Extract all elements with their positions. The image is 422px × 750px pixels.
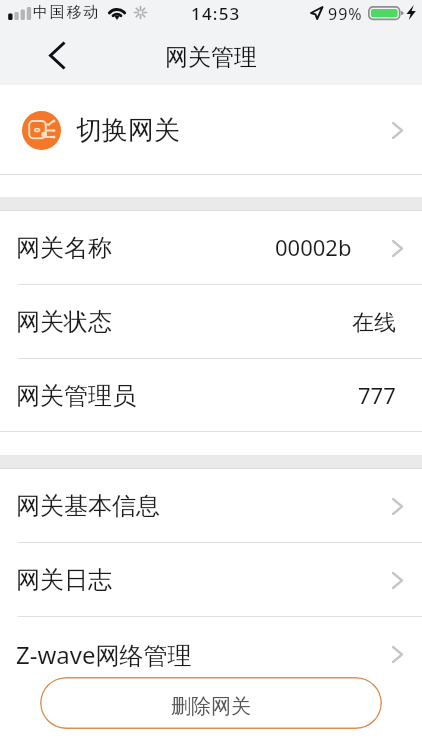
staticText: Z-wave网络管理 (16, 638, 192, 671)
staticText: 网关状态 (16, 307, 112, 337)
staticText: 99% (328, 3, 363, 25)
button[interactable]: Z-wave网络管理 (0, 617, 422, 691)
staticText: 在线 (352, 309, 396, 337)
button[interactable]: 网关管理员 (0, 359, 422, 432)
button[interactable]: 删除网关 (40, 677, 382, 729)
button[interactable]: 网关日志 (0, 543, 422, 617)
staticText: 14:53 (191, 2, 241, 25)
staticText: 中国移动 (33, 3, 100, 22)
button[interactable]: 网关基本信息 (0, 469, 422, 543)
staticText: 网关日志 (16, 565, 112, 595)
staticText: 网关管理 (165, 43, 257, 72)
staticText: 删除网关 (171, 694, 251, 719)
button[interactable]: 网关状态 (0, 285, 422, 359)
staticText: 00002b (275, 232, 352, 262)
staticText: 网关名称 (16, 233, 112, 263)
button[interactable]: 切换网关 (0, 85, 422, 175)
staticText: 切换网关 (76, 114, 180, 147)
staticText: 网关管理员 (16, 381, 136, 411)
staticText: 777 (358, 380, 396, 410)
button[interactable]: Back (0, 30, 62, 85)
staticText: 网关基本信息 (16, 491, 160, 521)
button[interactable]: 网关名称 (0, 211, 422, 285)
